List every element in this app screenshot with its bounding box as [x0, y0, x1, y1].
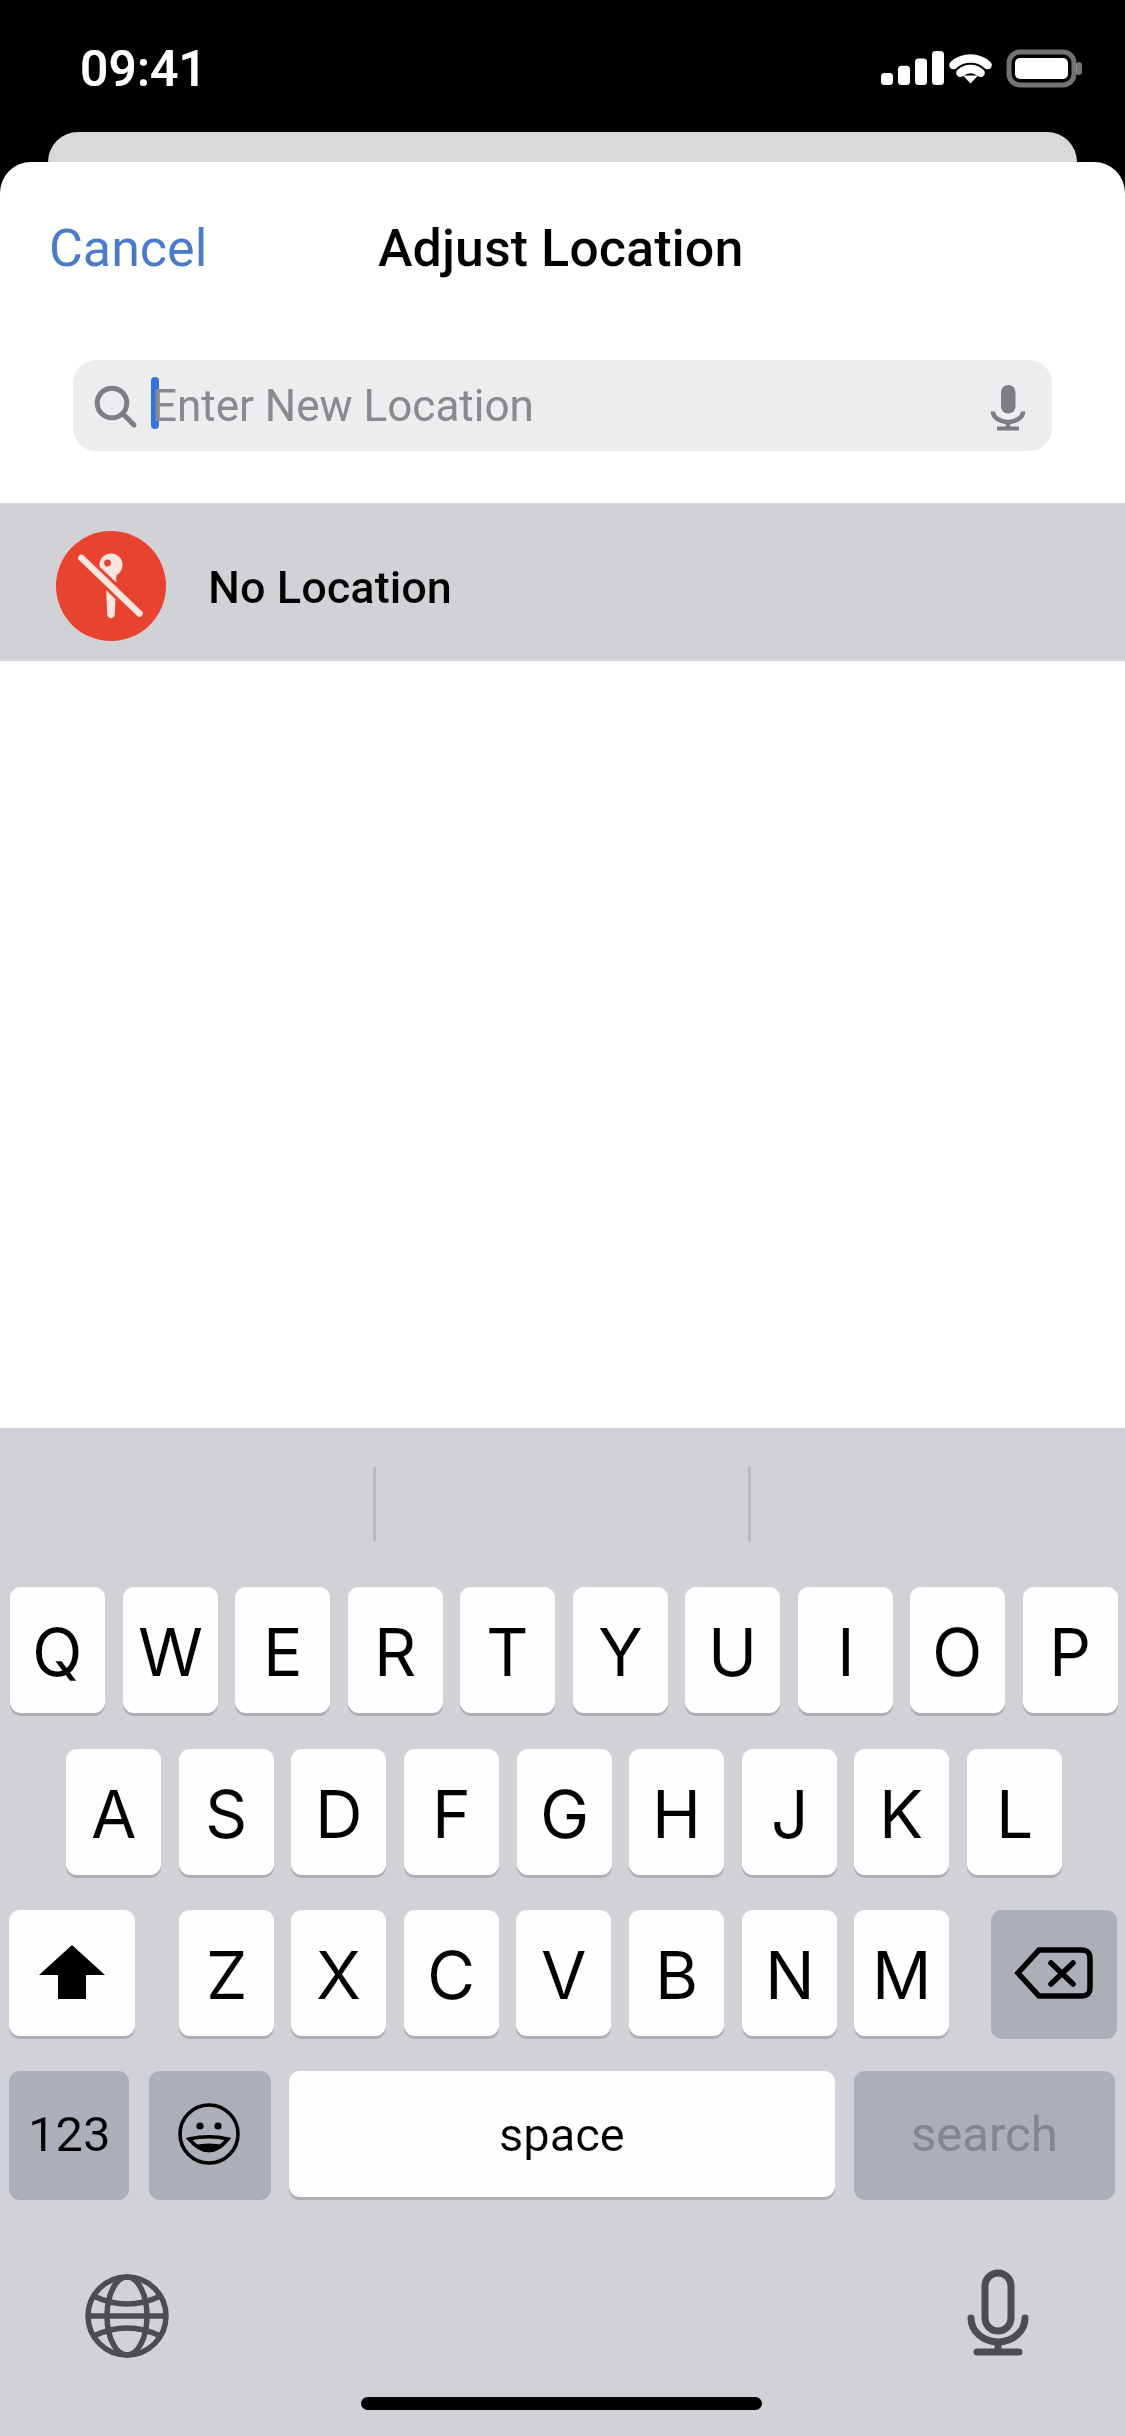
staticText: space [499, 2107, 625, 2162]
staticText: V [541, 1935, 587, 2015]
button[interactable]: T [460, 1587, 555, 1713]
button[interactable]: U [685, 1587, 780, 1713]
staticText: T [486, 1612, 529, 1692]
staticText: 123 [28, 2106, 111, 2163]
button[interactable]: R [348, 1587, 443, 1713]
button[interactable]: V [516, 1910, 611, 2036]
staticText: K [879, 1774, 924, 1854]
button[interactable]: I [798, 1587, 893, 1713]
button[interactable]: Emoji [149, 2071, 271, 2197]
button[interactable]: Backspace [991, 1910, 1117, 2036]
staticText: No Location [208, 561, 452, 614]
button[interactable]: Enter New Location [73, 360, 1052, 451]
staticText: Y [598, 1612, 643, 1692]
staticText: W [138, 1612, 204, 1692]
staticText: Adjust Location [378, 218, 744, 279]
staticText: D [315, 1774, 363, 1854]
button[interactable]: L [967, 1749, 1062, 1875]
button[interactable]: H [629, 1749, 724, 1875]
button[interactable]: 123 [9, 2071, 129, 2197]
button[interactable]: Z [179, 1910, 274, 2036]
button[interactable]: A [66, 1749, 161, 1875]
staticText: search [911, 2106, 1058, 2163]
button[interactable]: Shift [9, 1910, 135, 2036]
button[interactable]: search [854, 2071, 1115, 2197]
staticText: B [655, 1935, 699, 2015]
button[interactable]: X [291, 1910, 386, 2036]
staticText: P [1049, 1612, 1092, 1692]
staticText: N [765, 1935, 815, 2015]
button[interactable]: Dictation [968, 2270, 1028, 2358]
staticText: X [316, 1935, 362, 2015]
button[interactable]: W [123, 1587, 218, 1713]
button[interactable]: M [854, 1910, 949, 2036]
staticText: S [205, 1774, 248, 1854]
staticText: L [996, 1774, 1034, 1854]
button[interactable]: C [404, 1910, 499, 2036]
button[interactable]: S [179, 1749, 274, 1875]
staticText: Enter New Location [152, 380, 534, 432]
button[interactable]: N [742, 1910, 837, 2036]
staticText: F [432, 1774, 471, 1854]
button[interactable]: Change keyboard language [84, 2273, 170, 2359]
button[interactable]: O [910, 1587, 1005, 1713]
staticText: Q [32, 1612, 83, 1692]
button[interactable]: P [1023, 1587, 1118, 1713]
staticText: G [540, 1774, 590, 1854]
staticText: U [708, 1612, 758, 1692]
staticText: 09:41 [80, 40, 207, 99]
button[interactable]: Y [573, 1587, 668, 1713]
staticText: R [374, 1612, 417, 1692]
button[interactable]: G [517, 1749, 612, 1875]
button[interactable]: D [291, 1749, 386, 1875]
staticText: E [263, 1612, 303, 1692]
button[interactable]: K [854, 1749, 949, 1875]
button[interactable]: B [629, 1910, 724, 2036]
button[interactable]: space [289, 2071, 835, 2197]
staticText: O [932, 1612, 983, 1692]
button[interactable]: Q [10, 1587, 105, 1713]
staticText: A [91, 1774, 137, 1854]
button[interactable]: Cancel [9, 196, 248, 301]
button[interactable]: E [235, 1587, 330, 1713]
button[interactable]: J [742, 1749, 837, 1875]
staticText: J [771, 1774, 809, 1854]
staticText: H [652, 1774, 702, 1854]
staticText: Z [206, 1935, 248, 2015]
button[interactable]: No Location [0, 503, 1125, 661]
staticText: M [872, 1935, 932, 2015]
staticText: C [427, 1935, 476, 2015]
button[interactable]: F [404, 1749, 499, 1875]
staticText: Cancel [49, 218, 208, 279]
staticText: I [837, 1612, 855, 1692]
